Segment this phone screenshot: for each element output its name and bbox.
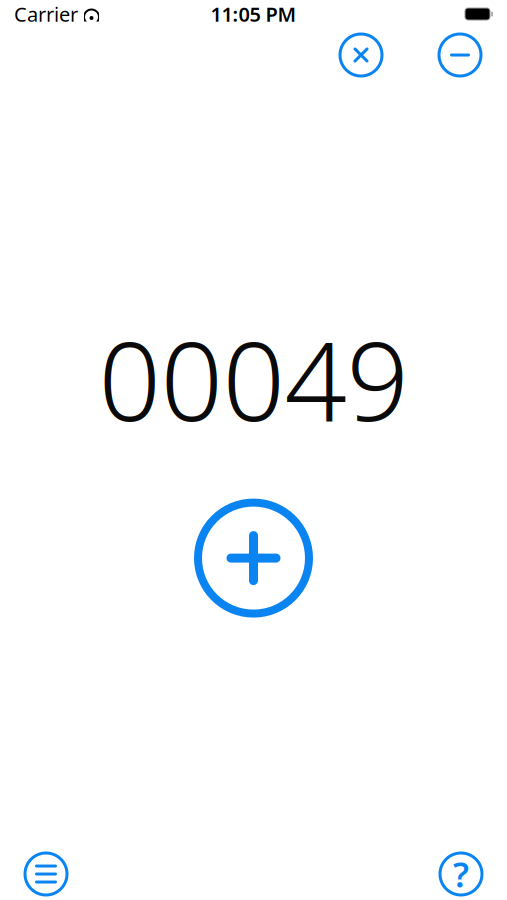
button[interactable]: Help: [435, 848, 487, 900]
button[interactable]: Reset: [335, 29, 387, 81]
staticText: ?: [453, 851, 469, 897]
button[interactable]: Menu: [20, 848, 72, 900]
button[interactable]: Decrement: [434, 29, 486, 81]
staticText: Carrier: [14, 1, 78, 27]
staticText: 00049: [98, 306, 408, 451]
button[interactable]: Increment: [188, 493, 318, 623]
staticText: 11:05 PM: [210, 1, 296, 27]
